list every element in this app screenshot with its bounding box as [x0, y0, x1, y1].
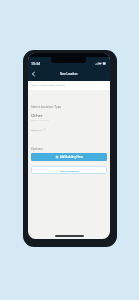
- staticText: New Location: [60, 72, 78, 76]
- button[interactable]: Add Coordinates: [31, 166, 107, 174]
- staticText: 10:34: [31, 61, 40, 66]
- button[interactable]: Back: [29, 68, 38, 79]
- staticText: Add Coordinates: [59, 169, 79, 172]
- button[interactable]: Add Building Floor: [31, 153, 107, 161]
- staticText: Other: [31, 112, 43, 118]
- staticText: Options: [31, 147, 43, 151]
- staticText: Select Location: [31, 118, 49, 121]
- staticText: Add Building Floor: [60, 155, 83, 159]
- staticText: Select Location Type: [31, 105, 62, 109]
- staticText: Select All: [31, 128, 42, 131]
- staticText: Enter location name, address: [32, 83, 65, 86]
